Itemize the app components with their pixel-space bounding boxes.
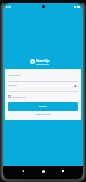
- button[interactable]: Remember me: [8, 94, 26, 99]
- staticText: Awesome Startup: [36, 63, 49, 65]
- staticText: Password: [8, 84, 17, 87]
- button[interactable]: LOGIN: [8, 102, 78, 111]
- button[interactable]: Forgot Password?: [8, 113, 78, 115]
- button[interactable]: Show password: [72, 84, 78, 87]
- staticText: LOGIN: [39, 105, 47, 108]
- button[interactable]: StartUp: [30, 58, 50, 65]
- button[interactable]: Back: [19, 167, 27, 175]
- staticText: StartUp: [36, 58, 50, 63]
- button[interactable]: Recent apps: [59, 167, 67, 175]
- button[interactable]: Home: [39, 167, 47, 175]
- staticText: Remember me: [13, 96, 26, 98]
- staticText: Email address: [8, 74, 21, 77]
